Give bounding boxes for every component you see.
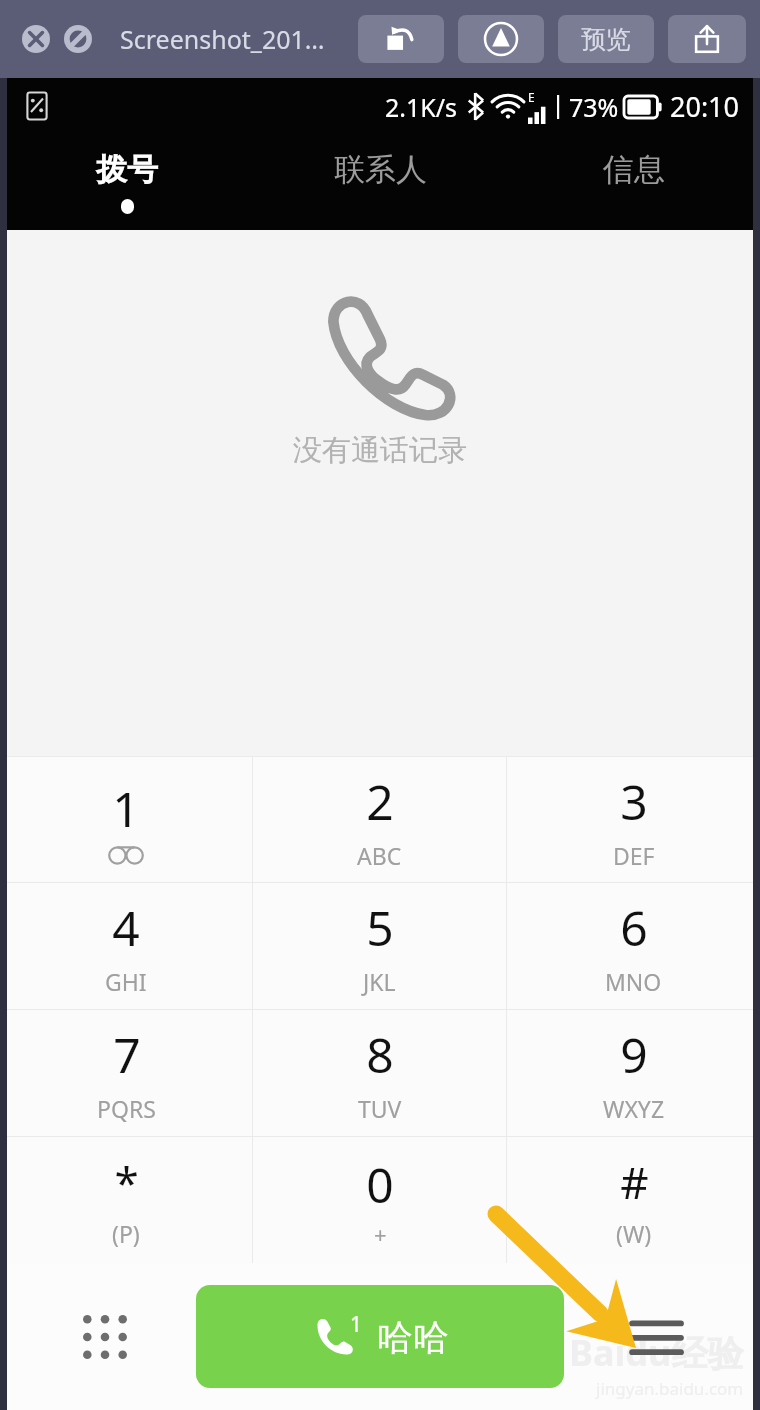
- staticText: 没有通话记录: [293, 432, 467, 469]
- staticText: 6: [620, 895, 648, 960]
- button[interactable]: 5: [253, 883, 506, 1009]
- button[interactable]: 拨号: [0, 134, 254, 230]
- staticText: 哈哈: [377, 1315, 449, 1360]
- button[interactable]: Toolbar button: [558, 15, 654, 63]
- staticText: 信息: [603, 150, 665, 189]
- staticText: #: [620, 1152, 649, 1212]
- staticText: ABC: [357, 840, 402, 871]
- button[interactable]: 2: [253, 757, 506, 882]
- staticText: *: [114, 1152, 139, 1212]
- staticText: (W): [616, 1218, 652, 1249]
- button[interactable]: 8: [253, 1010, 506, 1136]
- staticText: 0: [366, 1152, 394, 1217]
- staticText: Baidu经验: [569, 1328, 744, 1377]
- button[interactable]: 3: [507, 757, 760, 882]
- staticText: jingyan.baidu.com: [596, 1377, 744, 1400]
- button[interactable]: 4: [0, 883, 252, 1009]
- staticText: 9: [620, 1022, 648, 1087]
- button[interactable]: Disable: [64, 25, 92, 53]
- staticText: 2: [366, 769, 394, 834]
- button[interactable]: 6: [507, 883, 760, 1009]
- staticText: +: [374, 1219, 387, 1249]
- staticText: PQRS: [97, 1093, 156, 1124]
- staticText: 5: [366, 895, 394, 960]
- staticText: E: [528, 89, 535, 105]
- staticText: 联系人: [334, 150, 427, 189]
- button[interactable]: Toolbar button: [358, 15, 444, 63]
- button[interactable]: More options: [564, 1263, 746, 1410]
- staticText: 预览: [581, 24, 631, 55]
- button[interactable]: 1: [0, 757, 252, 882]
- staticText: 73%: [569, 90, 619, 124]
- staticText: MNO: [605, 966, 662, 997]
- staticText: 2.1K/s: [385, 90, 458, 124]
- button[interactable]: #: [507, 1137, 760, 1263]
- button[interactable]: Dialpad: [14, 1263, 196, 1410]
- staticText: 4: [112, 895, 140, 960]
- button[interactable]: Toolbar button: [668, 15, 746, 63]
- staticText: (P): [112, 1218, 140, 1249]
- staticText: 1: [350, 1310, 363, 1339]
- button[interactable]: 联系人: [254, 134, 507, 230]
- button[interactable]: 9: [507, 1010, 760, 1136]
- staticText: Screenshot_201…: [120, 22, 325, 56]
- staticText: GHI: [105, 966, 147, 997]
- staticText: 8: [366, 1022, 394, 1087]
- button[interactable]: 信息: [507, 134, 760, 230]
- button[interactable]: 7: [0, 1010, 252, 1136]
- button[interactable]: 0: [253, 1137, 506, 1263]
- button[interactable]: Toolbar button: [458, 15, 544, 63]
- staticText: WXYZ: [603, 1093, 665, 1124]
- staticText: 拨号: [96, 150, 158, 189]
- button[interactable]: *: [0, 1137, 252, 1263]
- button[interactable]: 1: [196, 1285, 564, 1388]
- staticText: DEF: [613, 840, 655, 871]
- button[interactable]: Close: [22, 25, 50, 53]
- staticText: 1: [112, 776, 140, 841]
- staticText: 3: [620, 769, 648, 834]
- staticText: 7: [113, 1022, 141, 1087]
- staticText: 20:10: [670, 88, 740, 125]
- staticText: JKL: [363, 966, 396, 997]
- staticText: TUV: [358, 1093, 402, 1124]
